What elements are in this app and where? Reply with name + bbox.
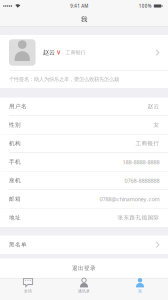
staticText: 工商银行 bbox=[135, 140, 159, 147]
staticText: 性别 bbox=[9, 121, 21, 129]
button[interactable]: 邮箱 bbox=[0, 190, 168, 208]
staticText: 用户名 bbox=[9, 103, 27, 110]
staticText: 赵云 bbox=[43, 49, 55, 56]
button[interactable]: 通讯录 bbox=[56, 278, 112, 300]
button[interactable]: 我 bbox=[112, 278, 168, 300]
staticText: 赵云 bbox=[147, 103, 159, 110]
staticText: 手机 bbox=[9, 158, 21, 166]
staticText: 100% bbox=[139, 3, 152, 9]
staticText: 女 bbox=[153, 121, 159, 129]
staticText: 座机 bbox=[9, 177, 21, 184]
button[interactable]: 座机 bbox=[0, 171, 168, 190]
button[interactable]: 地址 bbox=[0, 208, 168, 227]
staticText: 退出登录 bbox=[72, 265, 96, 272]
staticText: 通讯录 bbox=[78, 289, 90, 294]
button[interactable]: 用户名 bbox=[0, 97, 168, 116]
staticText: 0788@chinamoney.com bbox=[99, 195, 159, 203]
staticText: 个性签名：助人为快乐之本，要怎么收获先怎么栽 bbox=[9, 76, 119, 83]
staticText: 黑名单 bbox=[9, 241, 27, 248]
button[interactable]: 性别 bbox=[0, 116, 168, 134]
button[interactable]: 机构 bbox=[0, 134, 168, 153]
button[interactable]: 黑名单 bbox=[0, 235, 168, 254]
staticText: 188-8888-8888 bbox=[122, 158, 159, 166]
staticText: 张东路孔德国际 bbox=[117, 214, 159, 221]
button[interactable]: 退出登录 bbox=[0, 258, 168, 278]
staticText: 我 bbox=[81, 15, 87, 23]
staticText: 工商银行 bbox=[65, 49, 85, 56]
staticText: V bbox=[57, 49, 60, 56]
staticText: 我 bbox=[138, 289, 142, 294]
staticText: 0768-8888888 bbox=[124, 177, 159, 184]
staticText: 9:41 AM bbox=[70, 3, 88, 9]
staticText: 邮箱 bbox=[9, 195, 21, 203]
staticText: 会话 bbox=[24, 289, 32, 293]
staticText: 地址 bbox=[9, 214, 21, 221]
button[interactable]: 赵云 bbox=[0, 35, 168, 88]
staticText: 机构 bbox=[9, 140, 21, 147]
button[interactable]: 手机 bbox=[0, 153, 168, 171]
button[interactable]: 会话 bbox=[0, 278, 56, 300]
